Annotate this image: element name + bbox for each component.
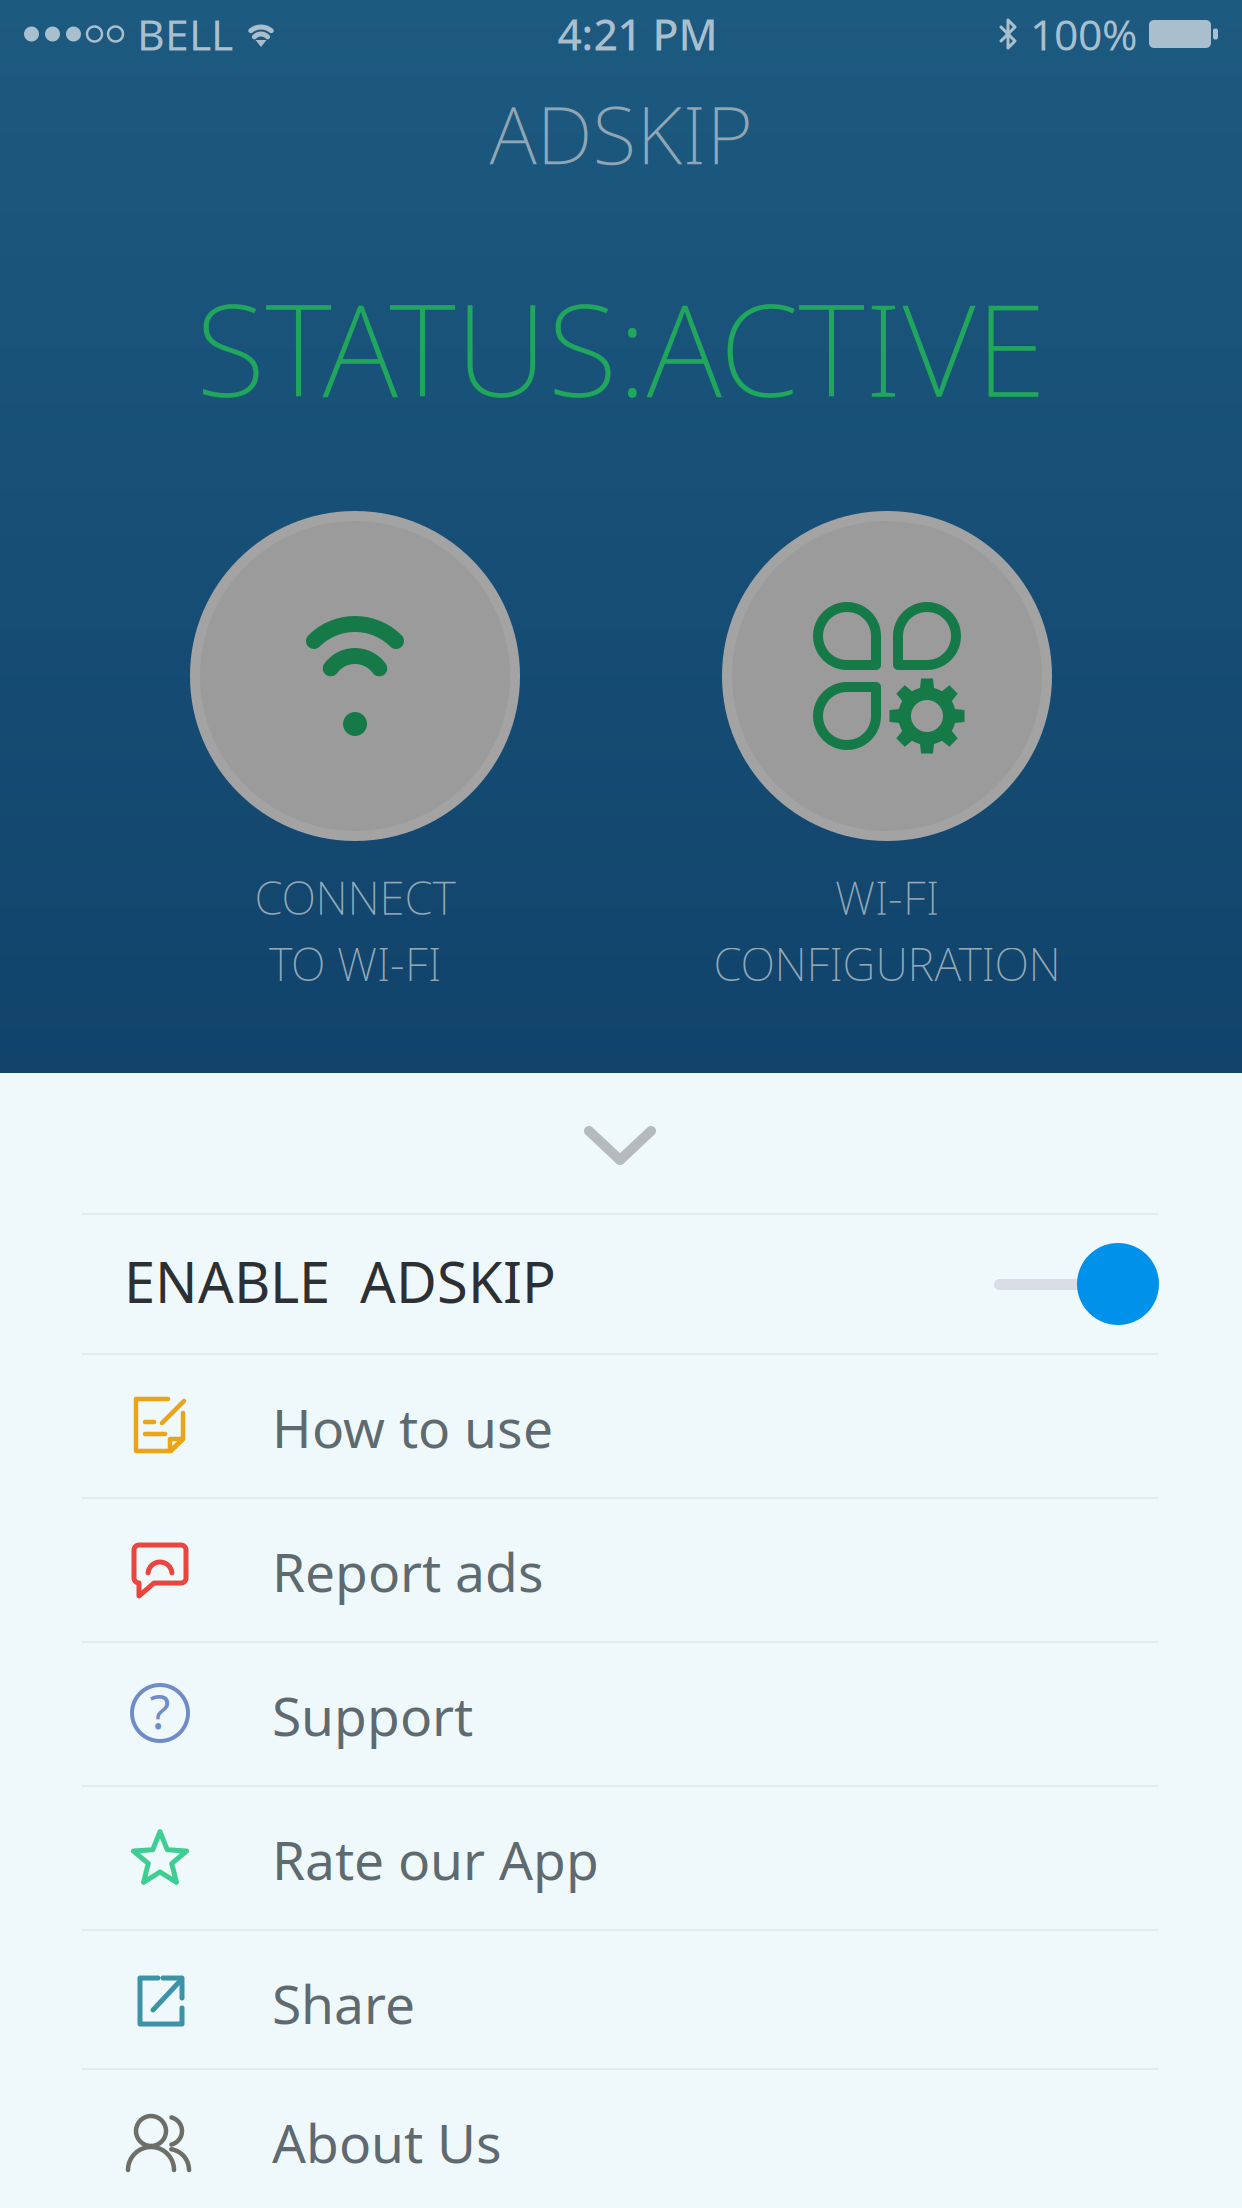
button[interactable]: ENABLE ADSKIP <box>0 1213 1242 1353</box>
button[interactable]: About Us <box>0 2068 1242 2208</box>
button[interactable]: Share <box>0 1929 1242 2073</box>
button[interactable]: Report ads <box>0 1497 1242 1641</box>
staticText: TO WI-FI <box>269 933 441 993</box>
staticText: STATUS:ACTIVE <box>195 262 1046 432</box>
staticText: ADSKIP <box>489 80 752 186</box>
staticText: 4:21 PM <box>557 6 717 62</box>
button[interactable]: Rate our App <box>0 1785 1242 1929</box>
staticText: ENABLE ADSKIP <box>124 1244 556 1318</box>
staticText: Share <box>272 1968 415 2039</box>
staticText: Support <box>272 1680 473 1751</box>
button[interactable]: ? <box>0 1641 1242 1785</box>
staticText: How to use <box>272 1392 553 1463</box>
staticText: Report ads <box>272 1536 544 1607</box>
button[interactable]: WI-FI <box>607 511 1167 981</box>
staticText: About Us <box>272 2107 502 2178</box>
button[interactable]: CONNECT <box>75 511 635 981</box>
staticText: CONNECT <box>254 867 455 927</box>
staticText: 100% <box>1030 6 1137 62</box>
staticText: WI-FI <box>835 867 939 927</box>
button[interactable]: How to use <box>0 1353 1242 1497</box>
staticText: ? <box>149 1679 170 1743</box>
staticText: CONFIGURATION <box>713 933 1060 993</box>
button[interactable]: Collapse panel <box>554 1096 686 1196</box>
staticText: BELL <box>137 6 233 62</box>
staticText: Rate our App <box>272 1824 599 1895</box>
